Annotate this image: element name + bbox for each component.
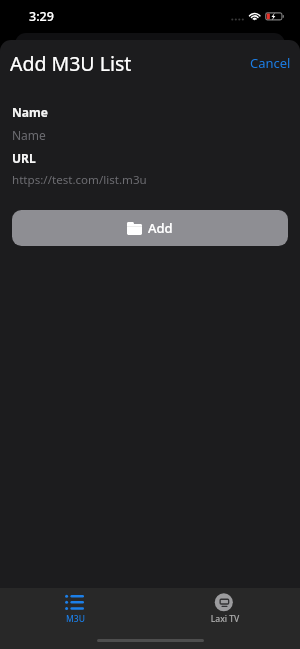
staticText: M3U: [66, 613, 85, 625]
staticText: Name: [12, 104, 48, 120]
staticText: Cancel: [250, 54, 291, 72]
button[interactable]: Cancel: [242, 50, 299, 76]
button[interactable]: Add: [12, 210, 288, 246]
button[interactable]: Laxi TV tab: [150, 588, 300, 649]
staticText: URL: [12, 150, 36, 166]
button[interactable]: Name: [0, 124, 300, 144]
staticText: Add: [148, 219, 173, 237]
button[interactable]: M3U tab: [0, 588, 150, 649]
button[interactable]: https://test.com/list.m3u: [0, 169, 300, 189]
staticText: https://test.com/list.m3u: [12, 172, 147, 188]
staticText: 3:29: [29, 8, 54, 25]
staticText: Add M3U List: [10, 50, 132, 77]
staticText: Laxi TV: [208, 613, 242, 625]
staticText: Name: [12, 127, 46, 143]
